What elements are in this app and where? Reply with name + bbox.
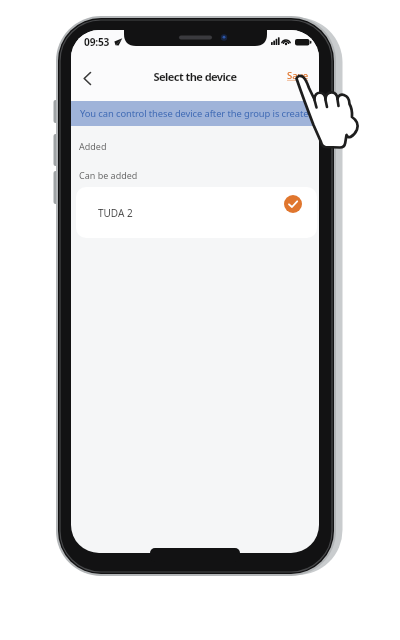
staticText: Can be added — [79, 169, 138, 181]
staticText: Save — [287, 69, 309, 82]
staticText: Added — [79, 140, 107, 152]
staticText: Select the device — [71, 69, 319, 84]
button[interactable] — [75, 66, 99, 90]
staticText: TUDA 2 — [98, 206, 133, 220]
button[interactable]: Save — [287, 69, 313, 85]
staticText: 09:53 — [84, 35, 110, 49]
staticText: You can control these device after the g… — [80, 107, 315, 120]
button[interactable]: TUDA 2 — [76, 187, 317, 238]
